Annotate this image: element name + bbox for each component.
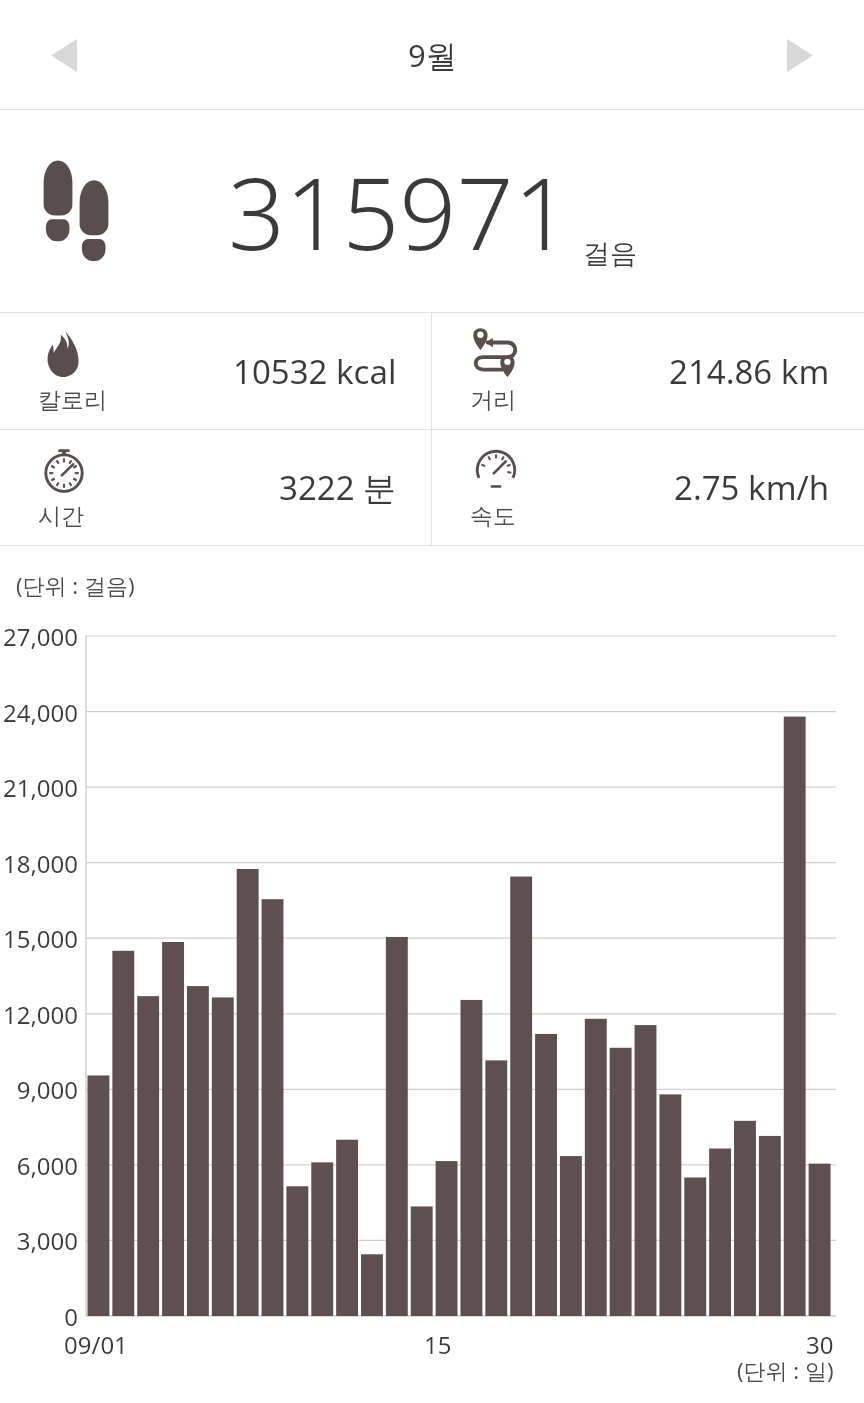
staticText: 10532 kcal xyxy=(233,349,397,394)
staticText: 시간 xyxy=(38,502,84,531)
staticText: 27,000 xyxy=(0,620,78,653)
staticText: 15 xyxy=(424,1328,452,1361)
staticText: 0 xyxy=(0,1300,78,1333)
staticText: 09/01 xyxy=(64,1328,128,1361)
staticText: 30 xyxy=(806,1328,834,1361)
staticText: 12,000 xyxy=(0,998,78,1031)
staticText: 칼로리 xyxy=(38,386,107,415)
staticText: 거리 xyxy=(470,386,516,415)
button[interactable]: 칼로리 xyxy=(0,313,431,429)
staticText: (단위 : 일) xyxy=(737,1355,834,1385)
staticText: 24,000 xyxy=(0,696,78,729)
staticText: 3222 분 xyxy=(279,465,397,510)
staticText: 9,000 xyxy=(0,1073,78,1106)
staticText: 2.75 km/h xyxy=(674,465,830,510)
staticText: 214.86 km xyxy=(669,349,830,394)
staticText: 15,000 xyxy=(0,922,78,955)
staticText: 3,000 xyxy=(0,1224,78,1257)
staticText: 속도 xyxy=(470,502,516,531)
staticText: (단위 : 걸음) xyxy=(16,570,135,600)
staticText: 21,000 xyxy=(0,771,78,804)
staticText: 18,000 xyxy=(0,847,78,880)
staticText: 315971 xyxy=(228,143,571,279)
button[interactable]: 속도 xyxy=(432,430,864,545)
button[interactable]: 다음 달 xyxy=(766,21,834,89)
button[interactable]: 거리 xyxy=(432,313,864,429)
button[interactable]: 315971 xyxy=(0,110,864,312)
button[interactable]: 시간 xyxy=(0,430,431,545)
staticText: 6,000 xyxy=(0,1149,78,1182)
staticText: 9월 xyxy=(408,34,457,76)
staticText: 걸음 xyxy=(583,237,637,271)
button[interactable]: 이전 달 xyxy=(30,21,98,89)
